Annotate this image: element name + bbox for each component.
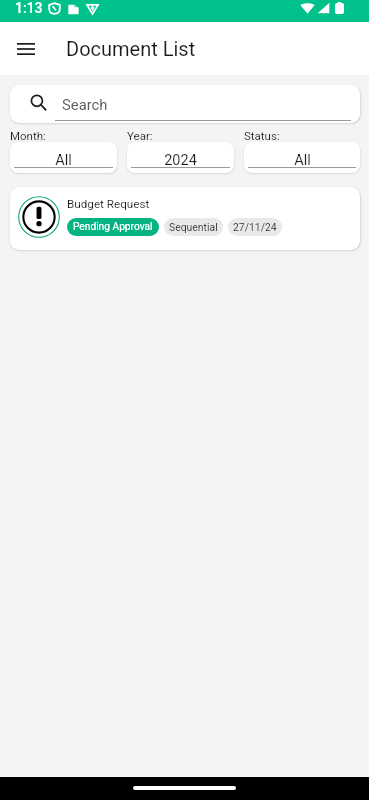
staticText: Year: (127, 129, 153, 142)
button[interactable]: Open navigation menu (6, 29, 46, 69)
button[interactable]: Search (10, 85, 360, 123)
staticText: Budget Request (67, 197, 150, 211)
staticText: 2024 (164, 152, 197, 169)
staticText: All (55, 152, 72, 169)
button[interactable]: All (244, 142, 360, 173)
button[interactable]: Budget Request (10, 187, 360, 250)
staticText: Status: (244, 129, 280, 142)
staticText: Document List (66, 37, 196, 60)
staticText: Sequential (169, 221, 218, 233)
button[interactable]: All (10, 142, 117, 173)
staticText: All (294, 152, 311, 169)
staticText: Search (62, 96, 108, 113)
staticText: 27/11/24 (233, 221, 277, 233)
button[interactable]: 2024 (127, 142, 234, 173)
staticText: Month: (10, 129, 46, 142)
staticText: Pending Approval (73, 221, 153, 233)
staticText: 1:13 (15, 0, 43, 16)
